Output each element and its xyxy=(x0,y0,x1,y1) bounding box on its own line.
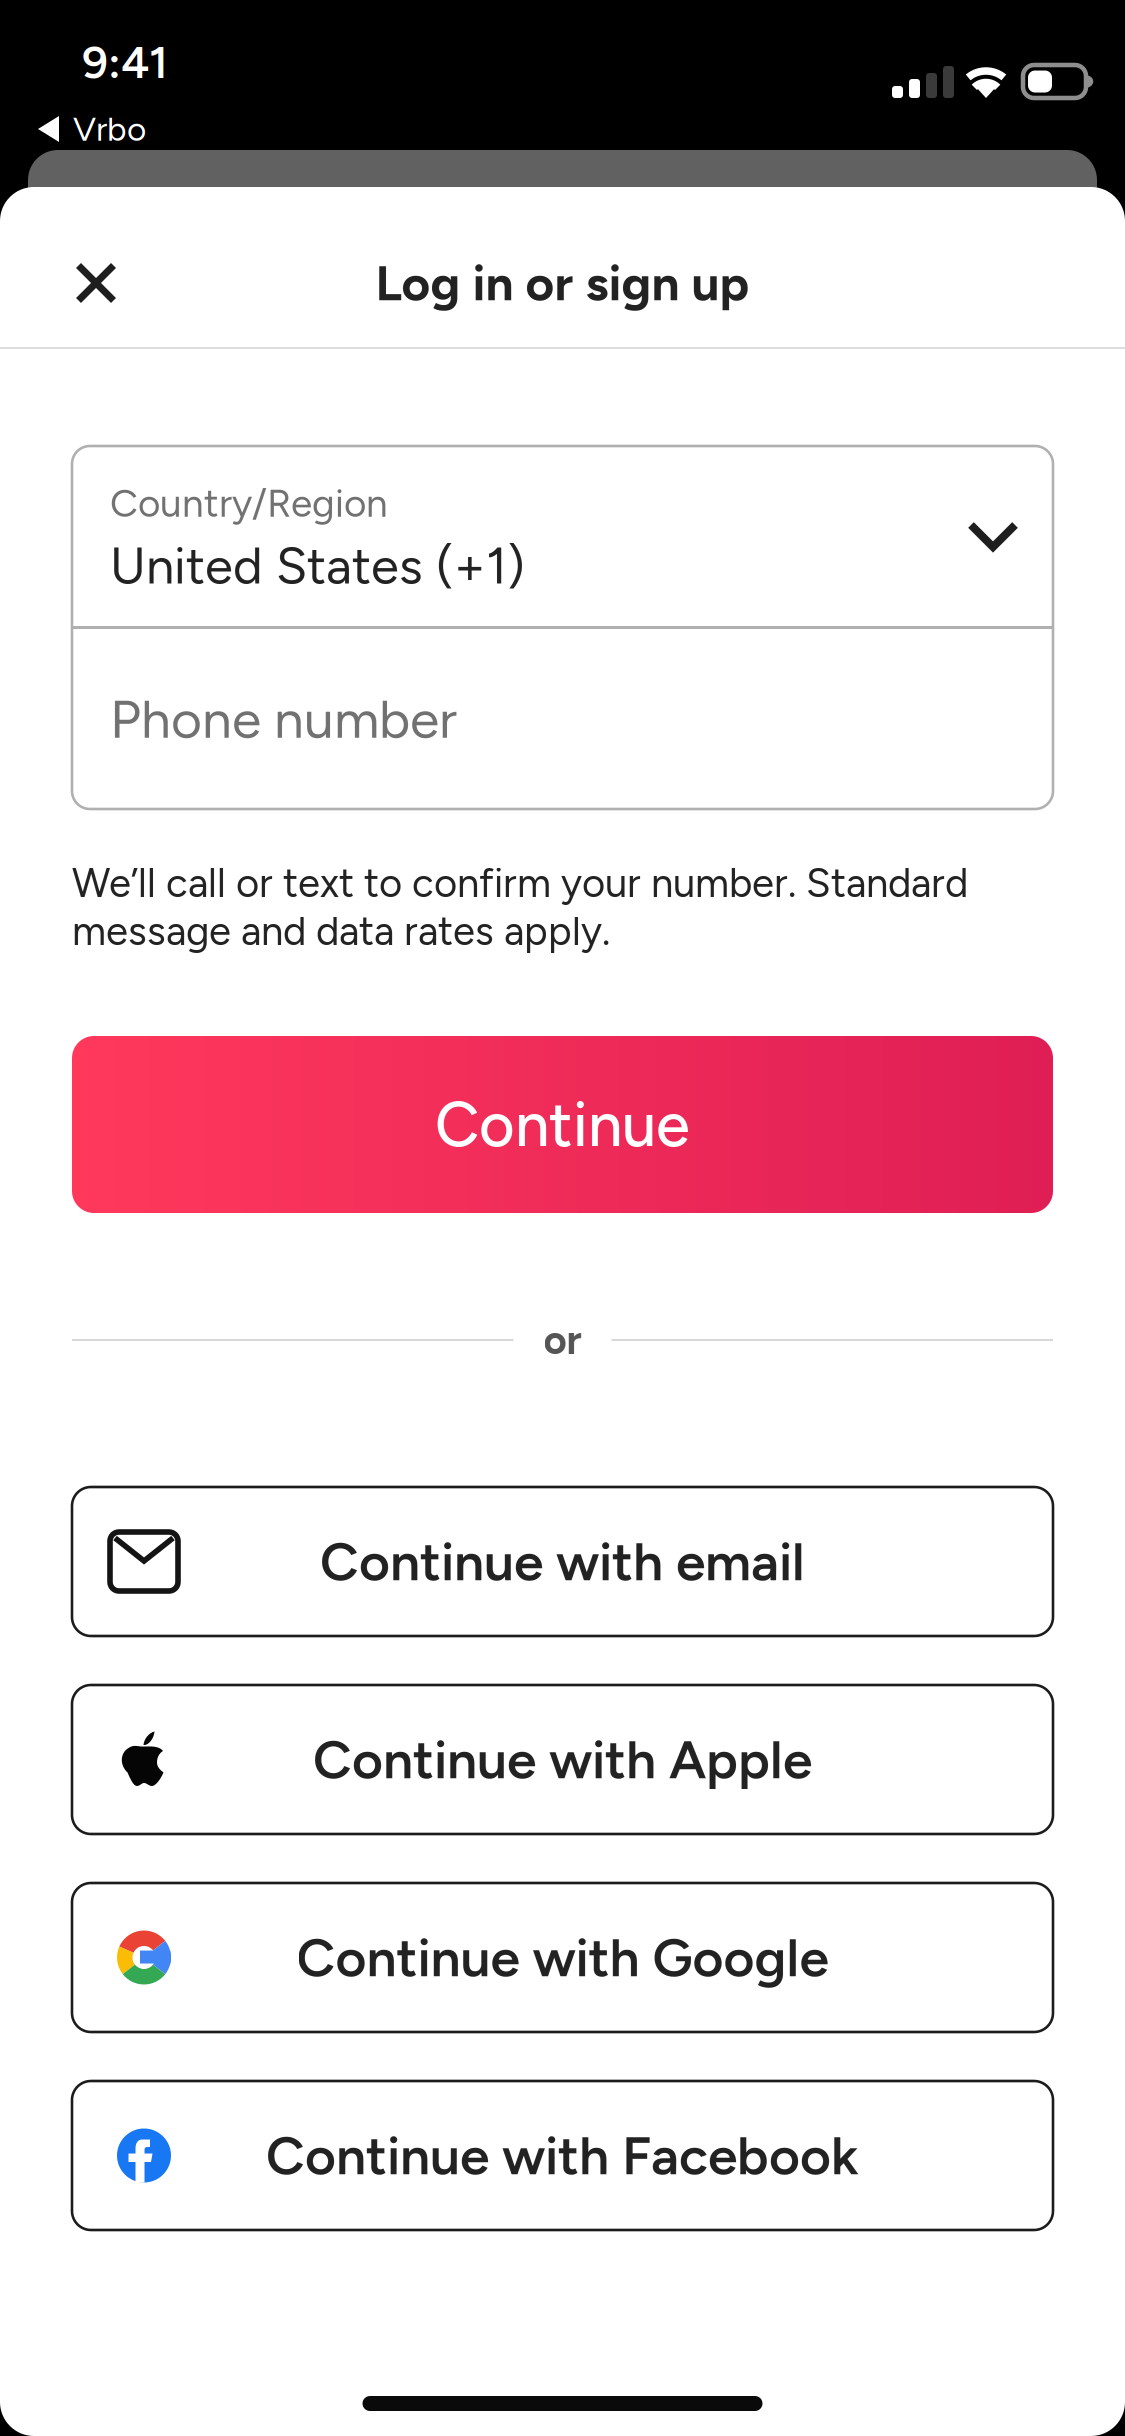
staticText: Continue with Facebook xyxy=(266,2123,859,2187)
staticText: Continue with Apple xyxy=(313,1727,812,1791)
staticText: Continue xyxy=(435,1088,690,1161)
button[interactable]: Continue xyxy=(72,1036,1053,1213)
button[interactable]: Country/Region xyxy=(72,446,1053,626)
button[interactable]: Continue with email xyxy=(72,1487,1053,1636)
staticText: Vrbo xyxy=(73,109,146,149)
staticText: Continue with Google xyxy=(296,1925,828,1989)
button[interactable]: Phone number xyxy=(72,629,1053,809)
button[interactable]: Continue with Apple xyxy=(72,1685,1053,1834)
staticText: Phone number xyxy=(110,687,457,751)
button[interactable]: Close xyxy=(42,229,150,337)
button[interactable]: Continue with Facebook xyxy=(72,2081,1053,2230)
staticText: Continue with email xyxy=(320,1529,805,1593)
staticText: Log in or sign up xyxy=(375,253,749,313)
staticText: United States (+1) xyxy=(110,535,525,596)
staticText: 9:41 xyxy=(82,35,168,89)
staticText: Country/Region xyxy=(110,480,388,526)
staticText: or xyxy=(543,1316,581,1364)
staticText: We’ll call or text to confirm your numbe… xyxy=(72,859,968,955)
button[interactable]: Continue with Google xyxy=(72,1883,1053,2032)
